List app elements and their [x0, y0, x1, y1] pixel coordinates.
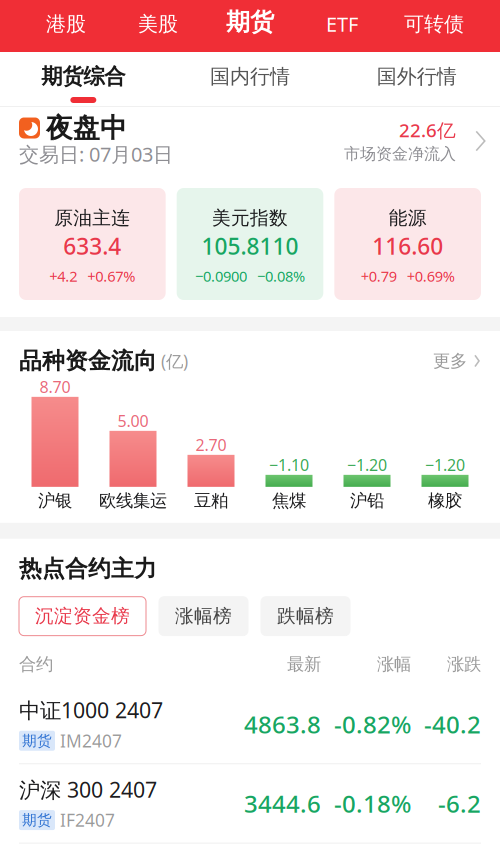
staticText: 最新 [287, 654, 321, 675]
staticText: 国外行情 [377, 64, 457, 89]
staticText: 美元指数 [212, 206, 288, 229]
staticText: 橡胶 [428, 490, 462, 511]
staticText: 可转债 [404, 12, 464, 36]
staticText: 涨幅榜 [175, 605, 232, 628]
staticText: 美股 [138, 12, 178, 36]
staticText: 欧线集运 [99, 490, 167, 511]
staticText: 国内行情 [210, 64, 290, 89]
staticText: 沪铅 [350, 490, 384, 511]
staticText: −0.08% [257, 266, 305, 286]
staticText: 期货 [226, 7, 274, 37]
staticText: 夜盘中 [46, 112, 127, 144]
staticText: 焦煤 [272, 490, 306, 511]
button[interactable]: 国外行情 [333, 52, 500, 106]
staticText: +0.79 [361, 266, 397, 286]
staticText: 跌幅榜 [277, 605, 334, 628]
staticText: 豆粕 [194, 490, 228, 511]
button[interactable]: 能源 [334, 188, 481, 300]
button[interactable]: 美股 [112, 0, 204, 52]
staticText: −1.20 [425, 454, 465, 475]
staticText: 沉淀资金榜 [35, 605, 130, 628]
staticText: 热点合约主力 [19, 555, 157, 583]
staticText: ETF [326, 11, 358, 37]
staticText: -40.2 [424, 708, 481, 740]
staticText: −1.20 [347, 454, 387, 475]
staticText: 8.70 [39, 376, 70, 397]
staticText: -0.18% [334, 787, 411, 819]
staticText: 中证1000 2407 [19, 696, 163, 724]
staticText: 能源 [389, 206, 427, 229]
staticText: 涨幅 [377, 654, 411, 675]
staticText: +4.2 [49, 266, 77, 286]
staticText: 期货 [22, 732, 52, 750]
staticText: IF2407 [60, 809, 115, 832]
button[interactable]: 夜盘中 [0, 107, 500, 188]
staticText: 期货 [22, 811, 52, 829]
staticText: 涨跌 [447, 654, 481, 675]
staticText: 品种资金流向 [19, 347, 157, 375]
staticText: 合约 [19, 654, 53, 675]
staticText: 105.8110 [201, 231, 298, 261]
button[interactable]: 原油主连 [19, 188, 166, 300]
button[interactable]: 沉淀资金榜 [19, 597, 146, 636]
button[interactable]: ETF [296, 0, 388, 52]
staticText: 期货综合 [41, 63, 125, 90]
button[interactable]: 中证1000 2407 [0, 685, 500, 763]
staticText: 2.70 [195, 434, 226, 455]
staticText: IM2407 [60, 729, 122, 752]
staticText: 633.4 [63, 231, 121, 261]
staticText: 4863.8 [244, 708, 321, 740]
button[interactable]: 涨幅榜 [159, 597, 248, 636]
staticText: 22.6亿 [399, 118, 456, 142]
staticText: -0.82% [334, 708, 411, 740]
staticText: 交易日: 07月03日 [19, 141, 173, 167]
staticText: 5.00 [117, 410, 148, 431]
button[interactable]: 沪深 300 2407 [0, 764, 500, 842]
button[interactable]: 期货 [204, 0, 296, 52]
staticText: 原油主连 [54, 206, 130, 229]
staticText: 3444.6 [244, 787, 321, 819]
button[interactable]: 国内行情 [167, 52, 333, 106]
staticText: 更多 [433, 350, 467, 372]
staticText: −1.10 [269, 454, 309, 475]
staticText: 116.60 [372, 231, 443, 261]
button[interactable]: 期货综合 [0, 52, 167, 106]
button[interactable]: 港股 [20, 0, 112, 52]
staticText: 市场资金净流入 [344, 144, 456, 164]
button[interactable]: 跌幅榜 [261, 597, 350, 636]
button[interactable]: 美元指数 [177, 188, 323, 300]
button[interactable]: 更多 [433, 350, 481, 372]
button[interactable]: 可转债 [388, 0, 480, 52]
staticText: +0.69% [407, 266, 455, 286]
staticText: 港股 [46, 12, 86, 36]
staticText: 沪深 300 2407 [19, 775, 157, 803]
staticText: (亿) [161, 349, 188, 372]
staticText: +0.67% [87, 266, 135, 286]
staticText: 沪银 [38, 490, 72, 511]
staticText: −0.0900 [195, 266, 247, 286]
staticText: -6.2 [438, 787, 481, 819]
